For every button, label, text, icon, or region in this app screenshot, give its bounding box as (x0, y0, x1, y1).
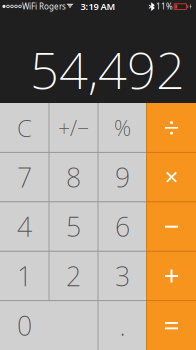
button[interactable]: +/− (49, 103, 98, 152)
staticText: . (119, 308, 125, 343)
button[interactable]: 3 (98, 251, 147, 301)
staticText: 5 (66, 209, 81, 244)
staticText: 8 (66, 159, 81, 195)
button[interactable]: 4 (0, 202, 49, 251)
staticText: 6 (115, 209, 130, 244)
staticText: C (17, 112, 32, 144)
staticText: 1 (17, 258, 32, 294)
staticText: % (114, 113, 131, 142)
button[interactable]: 5 (49, 202, 98, 251)
button[interactable]: 7 (0, 152, 49, 202)
staticText: 0 (17, 308, 32, 343)
button[interactable]: . (98, 301, 147, 350)
button[interactable]: C (0, 103, 49, 152)
staticText: 54,492 (30, 36, 185, 103)
button[interactable]: 1 (0, 251, 49, 301)
staticText: WiFi Rogers (22, 1, 66, 12)
button[interactable]: 8 (49, 152, 98, 202)
button[interactable]: Divide (147, 103, 196, 152)
staticText: 7 (17, 159, 32, 195)
staticText: 4 (17, 209, 32, 244)
button[interactable]: 0 (0, 301, 98, 350)
staticText: 2 (66, 258, 81, 294)
button[interactable]: Multiply (147, 152, 196, 202)
button[interactable]: 9 (98, 152, 147, 202)
button[interactable]: Add (147, 251, 196, 301)
staticText: 3 (115, 258, 130, 294)
button[interactable]: % (98, 103, 147, 152)
button[interactable]: Equals (147, 301, 196, 350)
button[interactable]: Subtract (147, 202, 196, 251)
staticText: 9 (115, 159, 130, 195)
button[interactable]: 6 (98, 202, 147, 251)
staticText: 11% (156, 1, 173, 12)
staticText: +/− (58, 113, 89, 142)
staticText: 3:19 AM (80, 0, 115, 13)
button[interactable]: 2 (49, 251, 98, 301)
